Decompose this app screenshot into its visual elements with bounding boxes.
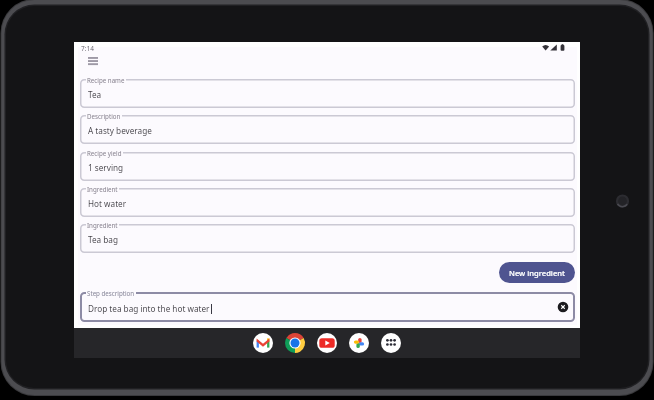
staticText: Tea bag (88, 234, 118, 245)
button[interactable]: Ingredient (80, 224, 575, 253)
staticText: Ingredient (87, 185, 118, 193)
staticText: 1 serving (88, 162, 124, 173)
button[interactable]: Photos (349, 333, 369, 353)
staticText: New ingredient (509, 268, 565, 278)
button[interactable]: Clear text (557, 301, 569, 313)
button[interactable]: Recipe yield (80, 152, 575, 181)
staticText: Ingredient (87, 221, 118, 229)
button[interactable]: Menu (84, 52, 103, 70)
button[interactable]: YouTube (317, 333, 337, 353)
staticText: Recipe name (87, 76, 125, 84)
button[interactable]: Ingredient (80, 188, 575, 217)
staticText: A tasty beverage (88, 125, 152, 136)
button[interactable]: Recipe name (80, 79, 575, 108)
button[interactable]: Chrome (285, 333, 305, 353)
button[interactable]: Step description (80, 292, 575, 322)
button[interactable]: All apps (381, 333, 401, 353)
staticText: Recipe yield (87, 149, 122, 157)
button[interactable]: Description (80, 115, 575, 144)
staticText: Tea (88, 89, 102, 100)
staticText: Drop tea bag into the hot water (88, 303, 210, 314)
staticText: Step description (87, 289, 135, 297)
staticText: Hot water (88, 198, 127, 209)
staticText: Description (87, 112, 121, 120)
button[interactable]: Gmail (253, 333, 273, 353)
staticText: 7:14 (81, 44, 94, 53)
button[interactable]: New ingredient (499, 262, 575, 283)
